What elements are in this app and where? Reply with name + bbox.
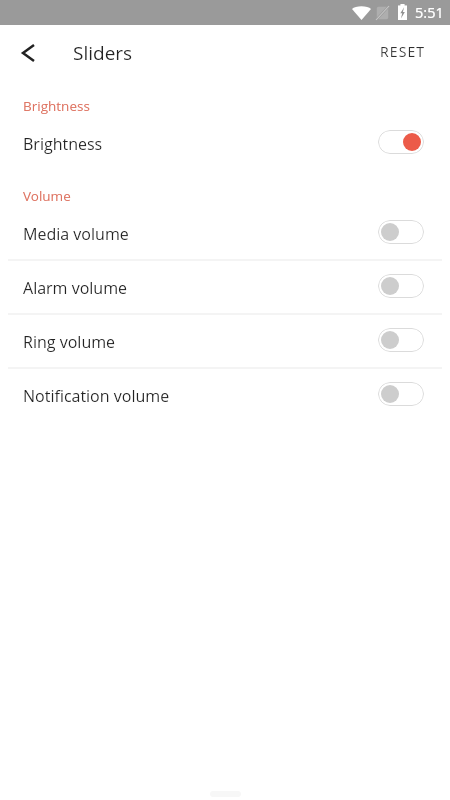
staticText: 5:51 xyxy=(415,3,444,23)
button[interactable]: Navigate up xyxy=(9,34,47,72)
staticText: Media volume xyxy=(23,223,129,245)
button[interactable]: Off xyxy=(378,328,424,352)
other: Battery charging xyxy=(398,4,407,20)
button[interactable]: Ring volume xyxy=(0,315,450,369)
button[interactable]: RESET xyxy=(364,32,450,75)
staticText: Alarm volume xyxy=(23,277,128,299)
staticText: Sliders xyxy=(73,40,133,66)
button[interactable]: Off xyxy=(378,382,424,406)
button[interactable]: Off xyxy=(378,274,424,298)
other: Wi-Fi xyxy=(352,5,371,20)
staticText: Brightness xyxy=(23,133,103,155)
staticText: Volume xyxy=(23,187,71,205)
staticText: Ring volume xyxy=(23,331,116,353)
staticText: Notification volume xyxy=(23,385,170,407)
button[interactable]: Alarm volume xyxy=(0,261,450,315)
other: No signal xyxy=(376,6,389,20)
button[interactable]: Notification volume xyxy=(0,369,450,423)
staticText: Brightness xyxy=(23,97,90,115)
button[interactable]: On xyxy=(378,130,424,154)
button[interactable]: Off xyxy=(378,220,424,244)
staticText: RESET xyxy=(380,42,426,61)
button[interactable]: Media volume xyxy=(0,207,450,261)
button[interactable]: Brightness xyxy=(0,117,450,171)
